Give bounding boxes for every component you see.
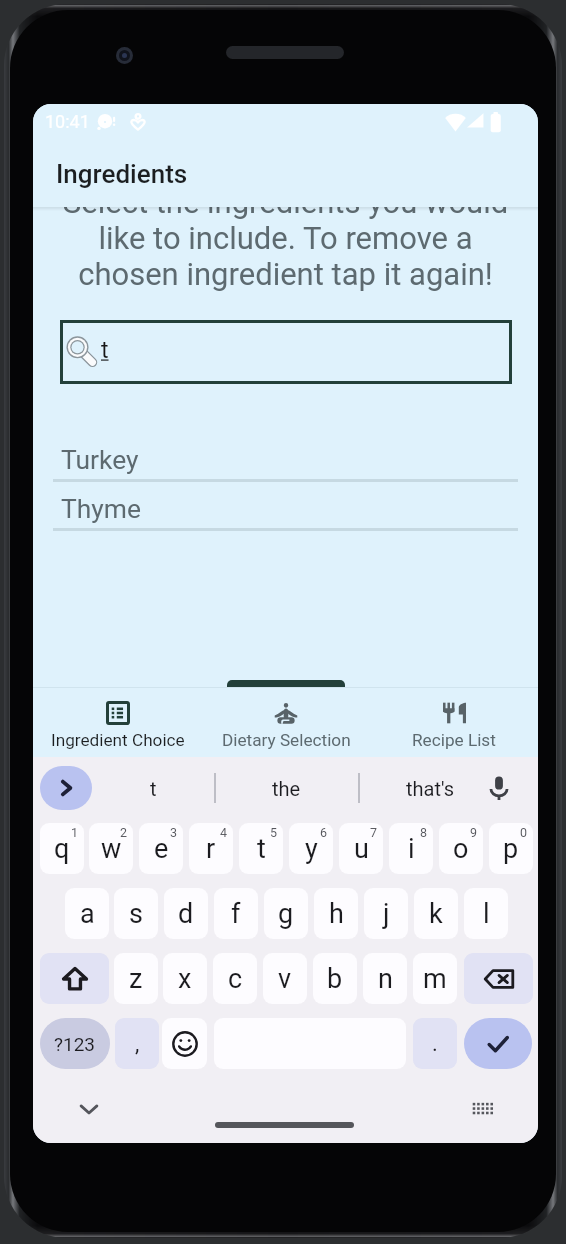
button[interactable]: Dietary Selection bbox=[202, 687, 370, 757]
button[interactable]: Hide keyboard bbox=[71, 1091, 107, 1127]
button[interactable]: j bbox=[364, 888, 408, 939]
staticText: 10:41 bbox=[45, 111, 90, 132]
button[interactable]: h bbox=[314, 888, 358, 939]
staticText: a bbox=[80, 898, 95, 930]
staticText: that's bbox=[406, 777, 455, 800]
button[interactable]: r bbox=[189, 823, 233, 874]
button[interactable]: ?123 bbox=[40, 1018, 110, 1069]
staticText: w bbox=[101, 833, 122, 865]
button[interactable]: Expand suggestions bbox=[40, 766, 92, 810]
staticText: t bbox=[150, 777, 157, 800]
staticText: Ingredient Choice bbox=[51, 730, 185, 750]
staticText: 5 bbox=[270, 825, 278, 840]
button[interactable]: Turkey bbox=[53, 440, 518, 488]
button[interactable]: k bbox=[414, 888, 458, 939]
staticText: u bbox=[354, 833, 369, 865]
staticText: 0 bbox=[520, 825, 528, 840]
staticText: 1 bbox=[71, 825, 79, 840]
staticText: z bbox=[129, 963, 143, 995]
staticText: m bbox=[423, 963, 447, 995]
staticText: h bbox=[329, 898, 344, 930]
staticText: Select the ingredients you would like to… bbox=[33, 184, 538, 292]
button[interactable]: d bbox=[164, 888, 208, 939]
staticText: 8 bbox=[420, 825, 428, 840]
button[interactable]: p bbox=[489, 823, 533, 874]
button[interactable]: Enter bbox=[464, 1018, 532, 1069]
staticText: Turkey bbox=[61, 445, 139, 476]
staticText: r bbox=[206, 833, 216, 865]
staticText: n bbox=[378, 963, 393, 995]
staticText: . bbox=[432, 1031, 438, 1057]
staticText: f bbox=[231, 898, 241, 930]
button[interactable]: t bbox=[239, 823, 283, 874]
button[interactable]: t bbox=[92, 766, 214, 810]
staticText: 3 bbox=[170, 825, 178, 840]
button[interactable]: z bbox=[114, 953, 158, 1004]
button[interactable]: Change keyboard bbox=[465, 1091, 501, 1127]
button[interactable]: , bbox=[115, 1018, 159, 1069]
staticText: k bbox=[429, 898, 443, 930]
button[interactable]: l bbox=[464, 888, 508, 939]
staticText: Dietary Selection bbox=[222, 730, 351, 750]
staticText: the bbox=[272, 777, 301, 800]
staticText: 4 bbox=[220, 825, 228, 840]
button[interactable]: y bbox=[289, 823, 333, 874]
staticText: e bbox=[154, 833, 169, 865]
button[interactable]: x bbox=[163, 953, 207, 1004]
button[interactable]: Ingredient Choice bbox=[33, 687, 202, 757]
button[interactable]: Emoji bbox=[162, 1018, 207, 1069]
button[interactable]: f bbox=[214, 888, 258, 939]
staticText: ?123 bbox=[54, 1033, 96, 1055]
staticText: v bbox=[278, 963, 292, 995]
staticText: j bbox=[383, 898, 390, 930]
button[interactable]: s bbox=[114, 888, 158, 939]
staticText: 9 bbox=[470, 825, 478, 840]
button[interactable]: Shift bbox=[40, 953, 109, 1004]
button[interactable]: that's bbox=[358, 766, 502, 810]
button[interactable]: u bbox=[339, 823, 383, 874]
button[interactable]: q bbox=[40, 823, 84, 874]
staticText: i bbox=[408, 833, 415, 865]
staticText: c bbox=[228, 963, 243, 995]
staticText: o bbox=[453, 833, 469, 865]
staticText: x bbox=[178, 963, 192, 995]
button[interactable]: Recipe List bbox=[370, 687, 538, 757]
staticText: 6 bbox=[320, 825, 328, 840]
staticText: s bbox=[129, 898, 143, 930]
button[interactable]: e bbox=[139, 823, 183, 874]
button[interactable]: w bbox=[89, 823, 133, 874]
button[interactable]: v bbox=[263, 953, 307, 1004]
button[interactable]: o bbox=[439, 823, 483, 874]
button[interactable]: Backspace bbox=[464, 953, 533, 1004]
staticText: q bbox=[54, 833, 70, 865]
button[interactable]: i bbox=[389, 823, 433, 874]
staticText: l bbox=[483, 898, 490, 930]
staticText: t bbox=[101, 337, 109, 364]
staticText: 2 bbox=[120, 825, 128, 840]
staticText: d bbox=[178, 898, 194, 930]
button[interactable]: b bbox=[313, 953, 357, 1004]
button[interactable]: m bbox=[413, 953, 457, 1004]
staticText: g bbox=[278, 898, 294, 930]
button[interactable]: a bbox=[65, 888, 109, 939]
button[interactable]: the bbox=[214, 766, 358, 810]
button[interactable]: . bbox=[413, 1018, 457, 1069]
staticText: y bbox=[305, 833, 318, 865]
button[interactable]: t bbox=[60, 320, 512, 384]
staticText: 7 bbox=[370, 825, 378, 840]
button[interactable]: g bbox=[264, 888, 308, 939]
button[interactable]: c bbox=[213, 953, 257, 1004]
staticText: t bbox=[257, 833, 266, 865]
staticText: Recipe List bbox=[412, 730, 496, 750]
staticText: Thyme bbox=[61, 494, 141, 525]
button[interactable]: Thyme bbox=[53, 489, 518, 537]
staticText: Ingredients bbox=[56, 159, 188, 189]
button[interactable]: Voice input bbox=[478, 768, 520, 808]
staticText: , bbox=[135, 1031, 140, 1057]
staticText: p bbox=[503, 833, 519, 865]
button[interactable]: n bbox=[363, 953, 407, 1004]
staticText: b bbox=[327, 963, 343, 995]
